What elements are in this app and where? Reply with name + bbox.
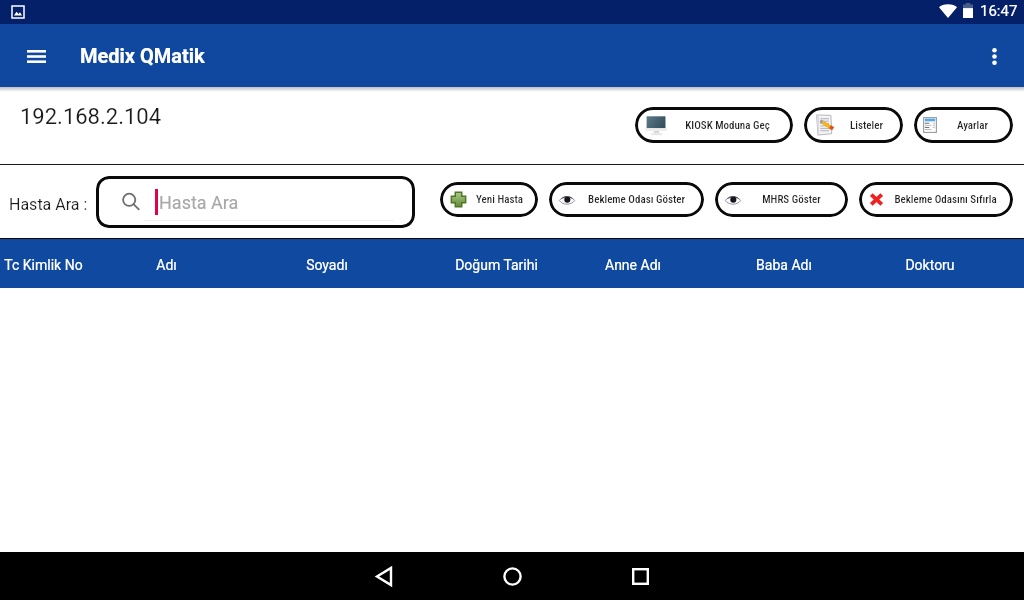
staticText: MHRS Göster	[762, 193, 821, 206]
button[interactable]: Ayarlar	[914, 107, 1013, 143]
button[interactable]: Yeni Hasta	[440, 182, 538, 217]
staticText: Bekleme Odası Göster	[588, 193, 685, 206]
button[interactable]: Back	[360, 552, 408, 600]
button[interactable]: Hasta Ara	[96, 176, 415, 228]
button[interactable]: Home	[488, 552, 536, 600]
staticText: Hasta Ara :	[9, 195, 88, 214]
staticText: Ayarlar	[957, 119, 988, 132]
staticText: Baba Adı	[756, 257, 812, 273]
staticText: Medix QMatik	[80, 44, 205, 67]
staticText: Soyadı	[306, 257, 348, 273]
button[interactable]: Listeler	[804, 107, 903, 143]
button[interactable]: MHRS Göster	[715, 182, 848, 217]
button[interactable]: KIOSK Moduna Geç	[635, 107, 793, 143]
staticText: Hasta Ara	[159, 192, 239, 213]
staticText: Adı	[156, 257, 177, 273]
staticText: Doğum Tarihi	[455, 257, 538, 273]
staticText: KIOSK Moduna Geç	[685, 119, 770, 132]
staticText: Bekleme Odasını Sıfırla	[894, 193, 997, 206]
staticText: Anne Adı	[605, 257, 661, 273]
staticText: Listeler	[850, 119, 883, 132]
staticText: Tc Kimlik No	[4, 257, 83, 273]
staticText: Doktoru	[905, 257, 955, 273]
button[interactable]: Bekleme Odasını Sıfırla	[859, 182, 1013, 217]
staticText: Yeni Hasta	[476, 193, 523, 206]
button[interactable]: More options	[970, 34, 1014, 78]
button[interactable]: Recent apps	[616, 552, 664, 600]
button[interactable]: Bekleme Odası Göster	[549, 182, 704, 217]
staticText: 16:47	[980, 2, 1018, 20]
staticText: 192.168.2.104	[20, 104, 162, 130]
button[interactable]: Open navigation menu	[16, 36, 56, 76]
